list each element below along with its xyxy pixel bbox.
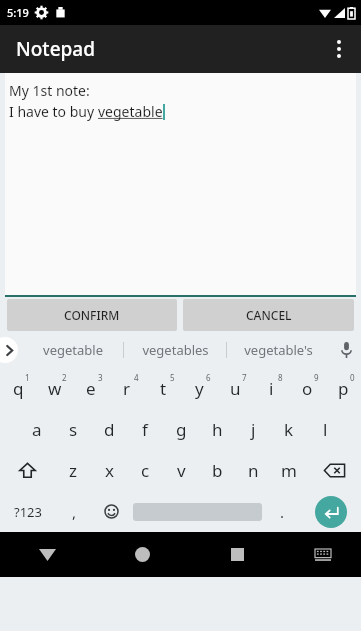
staticText: w <box>48 377 62 400</box>
staticText: o <box>302 377 313 400</box>
button[interactable]: p <box>325 367 361 409</box>
staticText: j <box>251 418 256 441</box>
button[interactable]: y <box>181 367 217 409</box>
button[interactable]: u <box>217 367 253 409</box>
staticText: u <box>230 377 241 400</box>
staticText: b <box>212 459 223 482</box>
button[interactable]: Recents <box>190 532 285 577</box>
staticText: l <box>323 418 328 441</box>
button[interactable]: Expand suggestions <box>0 337 18 363</box>
staticText: vegetable's <box>244 341 313 359</box>
button[interactable]: c <box>127 450 163 491</box>
button[interactable]: Home <box>95 532 190 577</box>
staticText: d <box>104 418 115 441</box>
button[interactable]: r <box>109 367 145 409</box>
staticText: vegetable <box>43 341 103 359</box>
staticText: 5 <box>170 372 175 383</box>
staticText: 3 <box>98 372 103 383</box>
staticText: 9 <box>314 372 319 383</box>
staticText: v <box>177 459 186 482</box>
button[interactable]: z <box>55 450 91 491</box>
staticText: ?123 <box>14 503 42 521</box>
staticText: k <box>284 418 294 441</box>
button[interactable]: . <box>264 491 301 532</box>
staticText: My 1st note: <box>9 81 90 100</box>
button[interactable]: l <box>307 409 343 450</box>
button[interactable]: e <box>73 367 109 409</box>
staticText: Notepad <box>16 36 95 62</box>
button[interactable]: n <box>235 450 271 491</box>
staticText: s <box>69 418 78 441</box>
button[interactable]: j <box>235 409 271 450</box>
staticText: c <box>141 459 150 482</box>
staticText: t <box>160 377 167 400</box>
button[interactable]: ?123 <box>0 491 56 532</box>
staticText: r <box>123 377 131 400</box>
button[interactable]: f <box>127 409 163 450</box>
staticText: n <box>248 459 259 482</box>
button[interactable]: s <box>55 409 91 450</box>
button[interactable]: More options <box>317 25 361 73</box>
staticText: m <box>281 459 297 482</box>
button[interactable]: Backspace <box>307 450 361 491</box>
button[interactable]: vegetable's <box>227 333 329 367</box>
button[interactable]: o <box>289 367 325 409</box>
staticText: vegetables <box>142 341 209 359</box>
staticText: 0 <box>350 372 355 383</box>
button[interactable]: , <box>56 491 93 532</box>
button[interactable]: vegetable <box>22 333 123 367</box>
staticText: z <box>69 459 77 482</box>
button[interactable]: Switch keyboard <box>285 532 361 577</box>
button[interactable]: Shift <box>0 450 55 491</box>
button[interactable]: g <box>163 409 199 450</box>
staticText: y <box>195 377 204 400</box>
button[interactable]: vegetables <box>124 333 226 367</box>
button[interactable]: i <box>253 367 289 409</box>
button[interactable]: b <box>199 450 235 491</box>
staticText: I have to buy <box>9 102 98 121</box>
button[interactable]: CANCEL <box>183 299 354 331</box>
button[interactable]: My 1st note: <box>5 73 356 297</box>
staticText: f <box>142 418 148 441</box>
staticText: x <box>105 459 114 482</box>
staticText: i <box>269 377 274 400</box>
button[interactable]: x <box>91 450 127 491</box>
button[interactable]: t <box>145 367 181 409</box>
staticText: , <box>72 502 77 522</box>
staticText: vegetable <box>98 102 163 121</box>
button[interactable]: Emoji <box>93 491 130 532</box>
staticText: 2 <box>62 372 67 383</box>
staticText: p <box>338 377 349 400</box>
button[interactable]: h <box>199 409 235 450</box>
staticText: 4 <box>134 372 139 383</box>
button[interactable]: Enter <box>301 491 361 532</box>
staticText: h <box>212 418 223 441</box>
staticText: 7 <box>242 372 247 383</box>
staticText: 6 <box>206 372 211 383</box>
staticText: 8 <box>278 372 283 383</box>
button[interactable]: Voice input <box>331 333 361 367</box>
staticText: a <box>32 418 42 441</box>
button[interactable]: w <box>37 367 73 409</box>
staticText: g <box>176 418 187 441</box>
staticText: CONFIRM <box>64 307 120 323</box>
staticText: . <box>280 502 285 522</box>
button[interactable]: a <box>19 409 55 450</box>
button[interactable]: v <box>163 450 199 491</box>
staticText: 1 <box>25 372 30 383</box>
button[interactable]: Space <box>130 491 264 532</box>
button[interactable]: Hide keyboard <box>0 532 95 577</box>
staticText: 5:19 <box>7 5 29 20</box>
button[interactable]: q <box>0 367 37 409</box>
staticText: CANCEL <box>246 307 292 323</box>
button[interactable]: d <box>91 409 127 450</box>
button[interactable]: k <box>271 409 307 450</box>
button[interactable]: CONFIRM <box>7 299 177 331</box>
staticText: q <box>13 377 24 400</box>
button[interactable]: m <box>271 450 307 491</box>
staticText: e <box>86 377 96 400</box>
